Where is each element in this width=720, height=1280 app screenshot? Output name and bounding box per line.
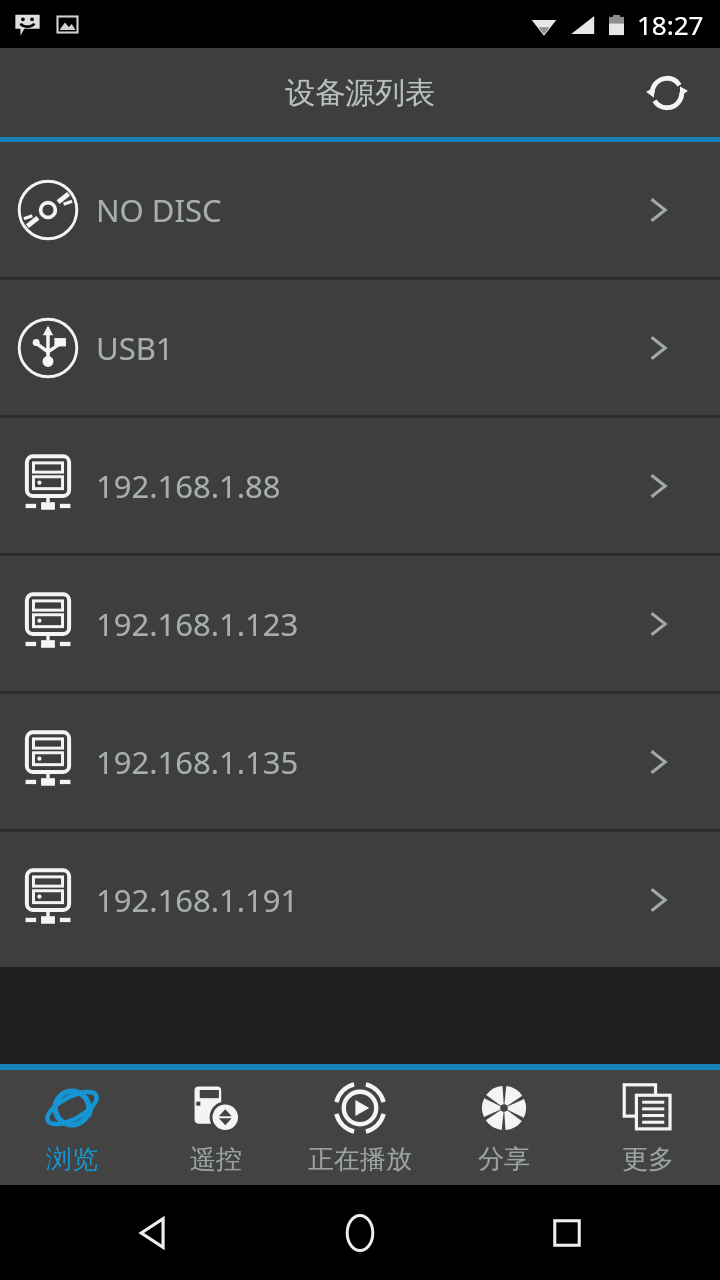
button[interactable]: 192.168.1.191 — [0, 832, 720, 967]
staticText: 192.168.1.135 — [96, 741, 299, 783]
button[interactable]: Refresh — [636, 62, 698, 124]
button[interactable]: USB1 — [0, 280, 720, 415]
staticText: NO DISC — [96, 189, 222, 231]
button[interactable]: Recents — [534, 1200, 600, 1266]
button[interactable]: 更多 — [576, 1070, 720, 1185]
staticText: 192.168.1.191 — [96, 879, 299, 921]
staticText: 192.168.1.123 — [96, 603, 299, 645]
button[interactable]: NO DISC — [0, 142, 720, 277]
button[interactable]: 192.168.1.123 — [0, 556, 720, 691]
staticText: 18:27 — [637, 7, 704, 42]
staticText: 192.168.1.88 — [96, 465, 281, 507]
button[interactable]: 遥控 — [144, 1070, 288, 1185]
staticText: 分享 — [478, 1143, 530, 1176]
button[interactable]: Home — [327, 1200, 393, 1266]
staticText: 正在播放 — [308, 1143, 412, 1176]
staticText: 设备源列表 — [285, 74, 435, 112]
staticText: 浏览 — [46, 1143, 98, 1176]
button[interactable]: 正在播放 — [288, 1070, 432, 1185]
staticText: 更多 — [622, 1143, 674, 1176]
button[interactable]: 分享 — [432, 1070, 576, 1185]
button[interactable]: 192.168.1.88 — [0, 418, 720, 553]
staticText: 遥控 — [190, 1143, 242, 1176]
button[interactable]: Back — [120, 1200, 186, 1266]
button[interactable]: 192.168.1.135 — [0, 694, 720, 829]
staticText: USB1 — [96, 327, 174, 369]
button[interactable]: 浏览 — [0, 1070, 144, 1185]
